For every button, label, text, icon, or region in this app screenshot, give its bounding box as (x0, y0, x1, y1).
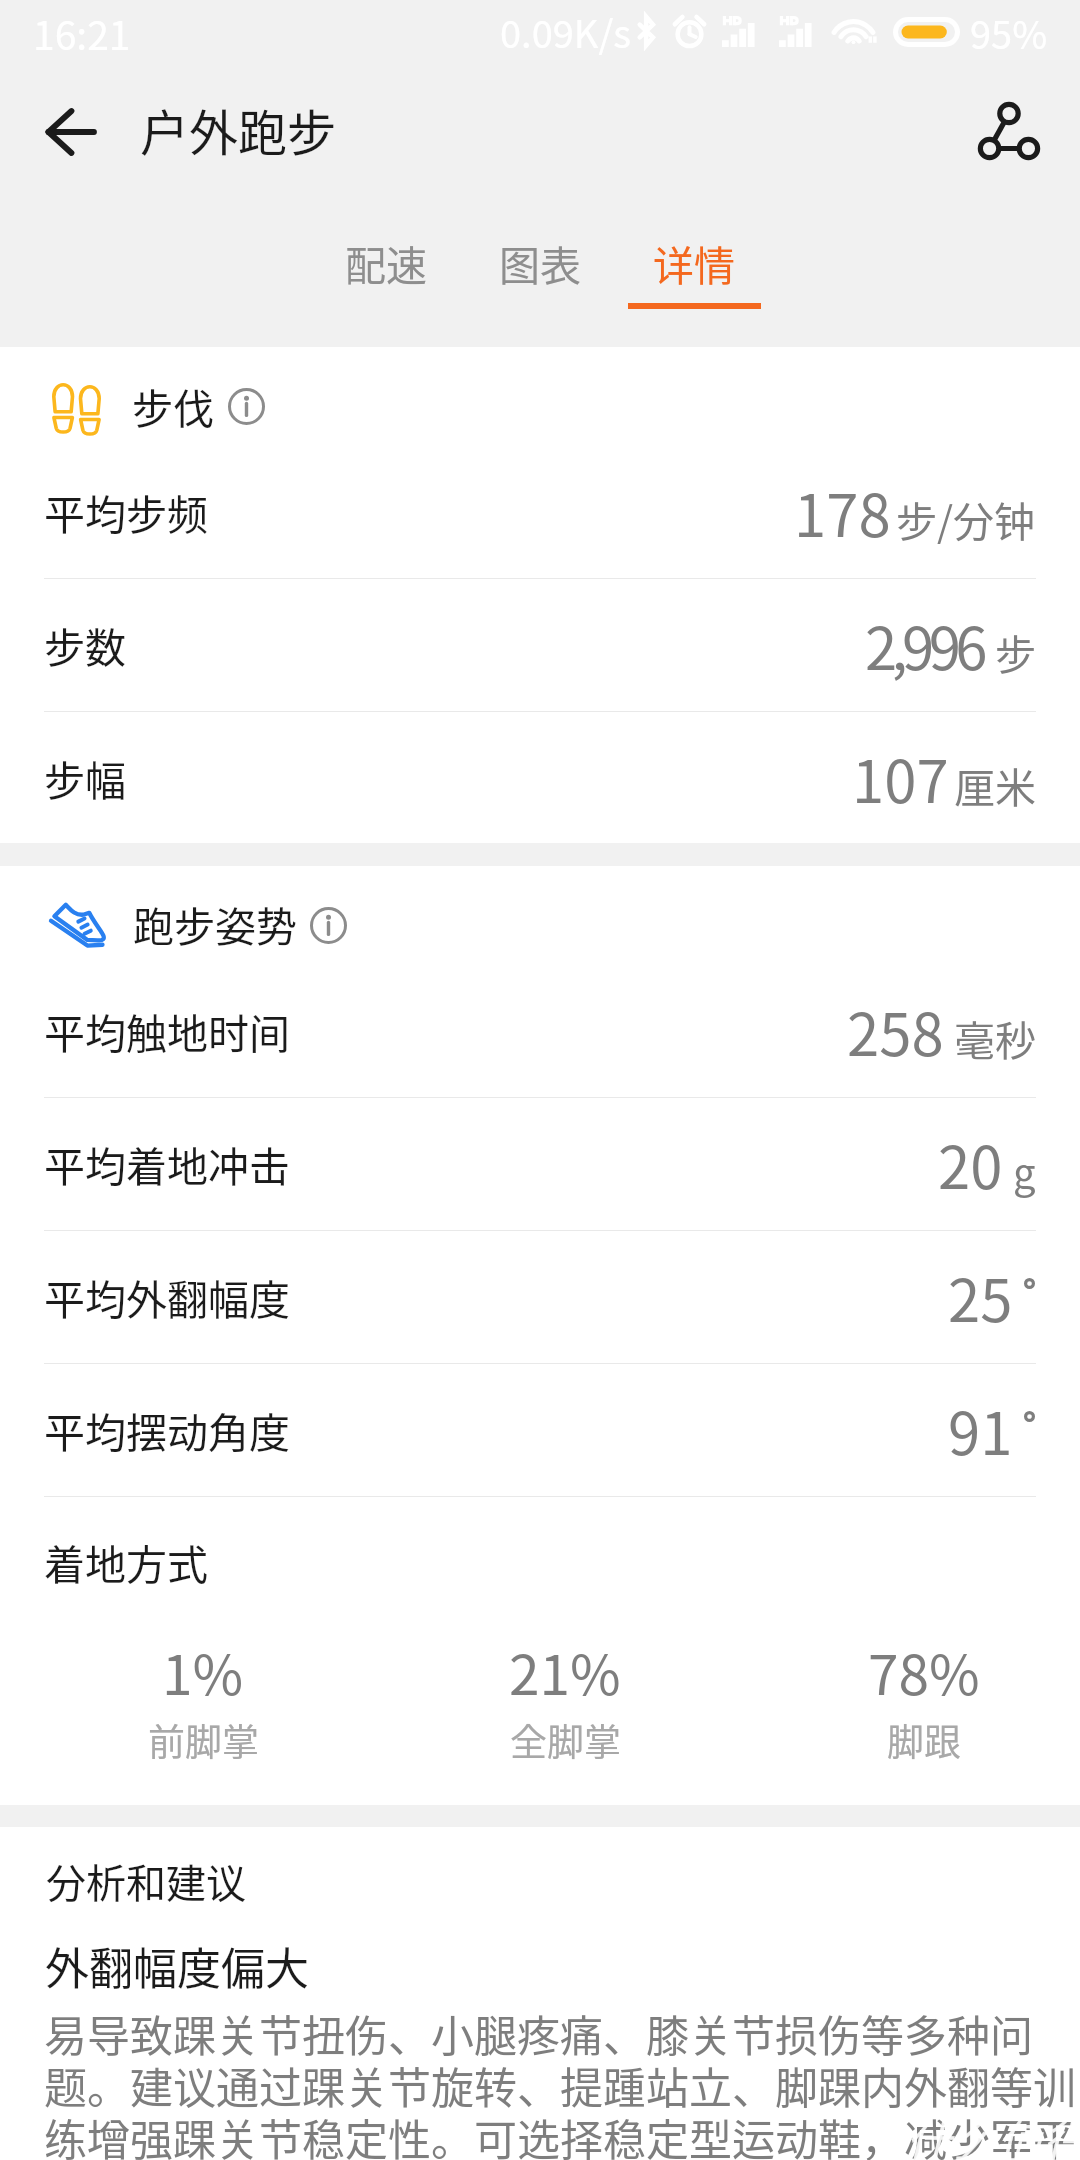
staticText: 脚跟 (887, 1713, 961, 1767)
staticText: 全脚掌 (510, 1713, 621, 1767)
staticText: 平均触地时间 (44, 1001, 290, 1060)
staticText: 0.09K/s (500, 4, 632, 59)
staticText: 1% (162, 1631, 244, 1711)
staticText: 跑步姿势 (133, 894, 297, 953)
staticText: 外翻幅度偏大 (45, 1934, 309, 1998)
staticText: 详情 (653, 233, 735, 292)
button[interactable]: 图表 (463, 212, 617, 332)
button[interactable]: Back (22, 84, 118, 180)
staticText: 什么值得买 (905, 2106, 1080, 2160)
button[interactable]: 详情 (617, 212, 771, 332)
button[interactable]: 21% (415, 1624, 715, 1764)
staticText: 步伐 (132, 376, 214, 435)
staticText: 平均外翻幅度 (44, 1267, 290, 1326)
staticText: 前脚掌 (148, 1713, 259, 1767)
staticText: 78% (868, 1631, 980, 1711)
staticText: 步幅 (44, 748, 126, 807)
staticText: 分析和建议 (46, 1852, 246, 1910)
button[interactable]: 平均步频 (0, 445, 1080, 578)
button[interactable]: 平均着地冲击 (0, 1097, 1080, 1230)
button[interactable]: 步幅 (0, 711, 1080, 844)
staticText: 步/分钟 (896, 489, 1036, 548)
button[interactable]: 配速 (309, 212, 463, 332)
button[interactable]: 平均外翻幅度 (0, 1230, 1080, 1363)
staticText: 178 (794, 470, 891, 554)
staticText: 毫秒 (954, 1008, 1036, 1067)
staticText: 户外跑步 (140, 94, 337, 165)
staticText: 厘米 (954, 755, 1036, 814)
staticText: 图表 (499, 233, 581, 292)
button[interactable]: 平均触地时间 (0, 964, 1080, 1097)
staticText: 258 (847, 989, 944, 1073)
staticText: 平均步频 (44, 482, 208, 541)
staticText: 着地方式 (44, 1532, 208, 1591)
staticText: 步 (995, 622, 1036, 681)
staticText: 平均着地冲击 (44, 1134, 290, 1193)
staticText: 25 (948, 1255, 1013, 1339)
staticText: 20 (938, 1122, 1003, 1206)
staticText: 平均摆动角度 (44, 1400, 290, 1459)
staticText: 16:21 (33, 5, 131, 61)
button[interactable]: Share (952, 83, 1048, 179)
staticText: 2,996 (865, 603, 982, 687)
button[interactable]: 78% (774, 1624, 1074, 1764)
staticText: 91 (948, 1388, 1013, 1472)
staticText: g (1013, 1142, 1036, 1200)
button[interactable]: 步数 (0, 578, 1080, 711)
staticText: 21% (509, 1631, 621, 1711)
button[interactable]: 1% (53, 1624, 353, 1764)
staticText: 107 (852, 736, 949, 820)
staticText: 配速 (345, 233, 427, 292)
staticText: 步数 (44, 615, 126, 674)
button[interactable]: Info (228, 388, 265, 425)
staticText: 易导致踝关节扭伤、小腿疼痛、膝关节损伤等多种问 题。建议通过踝关节旋转、提踵站立… (44, 2002, 1076, 2160)
staticText: 95% (970, 5, 1048, 60)
button[interactable]: 平均摆动角度 (0, 1363, 1080, 1496)
button[interactable]: Info (310, 907, 347, 944)
